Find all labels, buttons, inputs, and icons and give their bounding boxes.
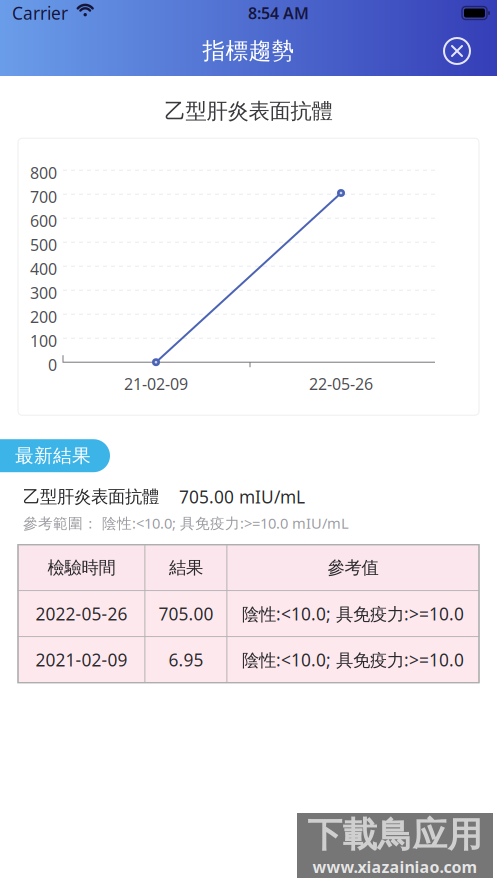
staticText: 0 — [48, 354, 57, 375]
staticText: 2021-02-09 — [35, 648, 127, 671]
button[interactable]: 最新結果 — [0, 439, 128, 472]
staticText: 200 — [30, 306, 57, 327]
staticText: 參考範圍： 陰性:<10.0; 具免疫力:>=10.0 mIU/mL — [23, 513, 349, 533]
staticText: 100 — [30, 330, 57, 351]
staticText: www.xiazainiao.com — [312, 856, 477, 877]
staticText: 500 — [30, 234, 57, 255]
staticText: 300 — [30, 282, 57, 303]
staticText: 陰性:<10.0; 具免疫力:>=10.0 — [242, 648, 464, 671]
staticText: 700 — [30, 186, 57, 207]
staticText: 乙型肝炎表面抗體 — [164, 98, 332, 124]
staticText: 2022-05-26 — [35, 602, 127, 625]
staticText: 21-02-09 — [124, 373, 188, 394]
staticText: 705.00 — [158, 602, 213, 625]
staticText: 8:54 AM — [248, 2, 309, 24]
staticText: 指標趨勢 — [202, 37, 294, 65]
staticText: Carrier — [12, 1, 68, 24]
staticText: 705.00 mIU/mL — [179, 485, 305, 508]
staticText: 下載鳥应用 — [307, 814, 482, 856]
staticText: 22-05-26 — [309, 373, 373, 394]
staticText: 800 — [30, 162, 57, 183]
staticText: 6.95 — [168, 648, 203, 671]
staticText: 陰性:<10.0; 具免疫力:>=10.0 — [242, 602, 464, 625]
staticText: 乙型肝炎表面抗體 — [23, 486, 159, 507]
staticText: 參考值 — [327, 557, 378, 578]
staticText: 最新結果 — [15, 444, 91, 467]
staticText: 檢驗時間 — [47, 557, 115, 578]
button[interactable]: Close — [440, 34, 474, 68]
staticText: 結果 — [169, 557, 203, 578]
staticText: 600 — [30, 210, 57, 231]
staticText: 400 — [30, 258, 57, 279]
